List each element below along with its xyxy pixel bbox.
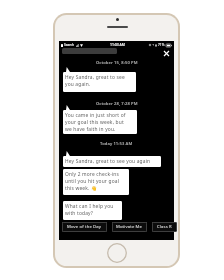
staticText: Move of the Day [67, 224, 102, 230]
staticText: Today 11:53 AM [100, 141, 133, 147]
button[interactable]: Motivate Me [112, 222, 147, 232]
staticText: What can I help you with today? [65, 203, 114, 217]
button[interactable]: Hey Sandra, great to see you again [63, 156, 161, 167]
button[interactable]: You came in just short of your goal this… [63, 110, 137, 134]
staticText: October 15, 8:50 PM [96, 60, 138, 66]
staticText: 11:03 AM [110, 42, 125, 47]
button[interactable]: Move of the Day [62, 222, 107, 232]
staticText: Class R [157, 224, 172, 230]
button[interactable]: Hey Sandra, great to see you again. [63, 72, 136, 92]
staticText: Hey Sandra, great to see you again. [65, 74, 125, 88]
button[interactable]: Close [161, 48, 172, 59]
staticText: 71% [158, 43, 165, 47]
staticText: Only 2 more check-ins until you hit your… [65, 171, 120, 192]
staticText: Hey Sandra, great to see you again [65, 158, 151, 165]
button[interactable]: Only 2 more check-ins until you hit your… [63, 169, 129, 195]
button[interactable]: What can I help you with today? [63, 201, 122, 220]
staticText: Motivate Me [116, 224, 143, 230]
staticText: Search [64, 43, 75, 47]
staticText: October 28, 7:28 PM [96, 101, 138, 107]
staticText: You came in just short of your goal this… [65, 112, 126, 133]
button[interactable]: Class R [152, 222, 177, 232]
